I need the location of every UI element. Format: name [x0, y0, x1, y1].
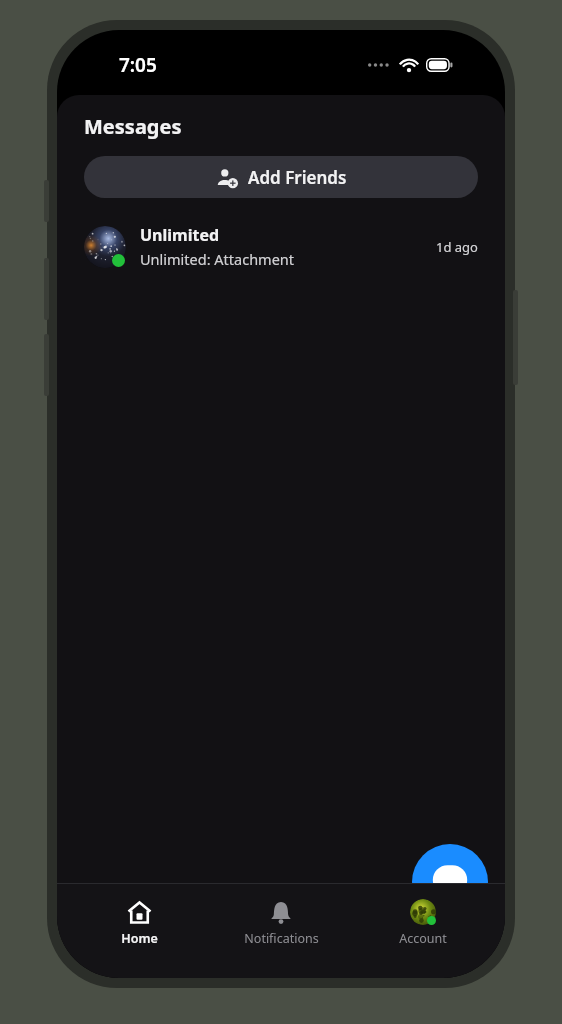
button[interactable]: Unlimited	[57, 220, 505, 273]
staticText: Unlimited	[140, 224, 220, 246]
staticText: 1d ago	[436, 238, 478, 256]
staticText: Home	[121, 930, 158, 947]
button[interactable]: Home	[79, 895, 199, 951]
button[interactable]: Notifications	[221, 895, 341, 951]
staticText: Messages	[84, 113, 182, 140]
button[interactable]: New message	[412, 844, 488, 920]
staticText: Notifications	[244, 930, 319, 947]
staticText: Add Friends	[248, 166, 347, 189]
staticText: Account	[399, 930, 447, 947]
button[interactable]: Account	[363, 895, 483, 951]
staticText: 7:05	[119, 52, 157, 78]
button[interactable]: Add Friends	[84, 156, 478, 198]
staticText: Unlimited: Attachment	[140, 249, 295, 269]
